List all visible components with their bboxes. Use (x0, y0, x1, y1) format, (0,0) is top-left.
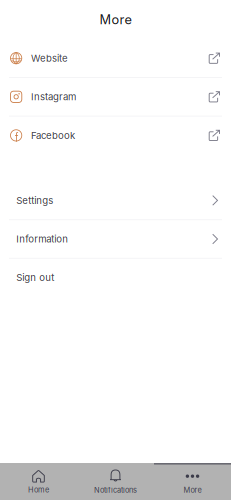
button[interactable]: Website (0, 39, 231, 77)
staticText: Settings (16, 195, 53, 206)
staticText: More (99, 12, 131, 27)
button[interactable]: Facebook (0, 117, 231, 154)
button[interactable]: Instagram (0, 78, 231, 116)
staticText: Notifications (94, 486, 137, 495)
staticText: Sign out (16, 272, 54, 283)
staticText: Website (31, 52, 68, 64)
button[interactable]: Settings (0, 182, 231, 219)
button[interactable]: Information (0, 220, 231, 258)
button[interactable]: Home (0, 463, 77, 500)
staticText: Home (28, 485, 49, 494)
staticText: Facebook (31, 130, 75, 141)
button[interactable]: Sign out (0, 259, 231, 296)
button[interactable]: More (154, 463, 231, 500)
staticText: Information (16, 233, 68, 245)
staticText: Instagram (31, 91, 76, 103)
button[interactable]: Notifications (77, 463, 154, 500)
staticText: More (183, 486, 201, 495)
